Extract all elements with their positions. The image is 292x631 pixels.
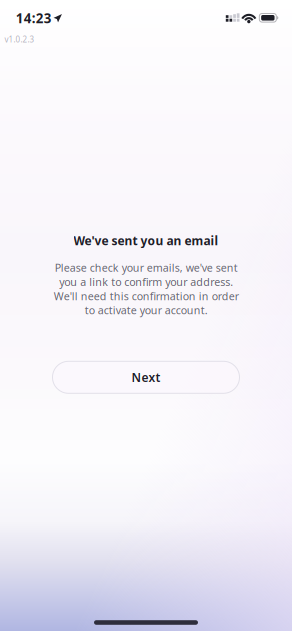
staticText: v1.0.2.3 xyxy=(4,34,34,45)
staticText: 14:23 xyxy=(16,9,52,27)
button[interactable]: Next xyxy=(52,361,239,393)
staticText: Next xyxy=(131,369,160,385)
staticText: We've sent you an email xyxy=(73,233,218,249)
staticText: Please check your emails, we've sent you… xyxy=(53,261,238,317)
